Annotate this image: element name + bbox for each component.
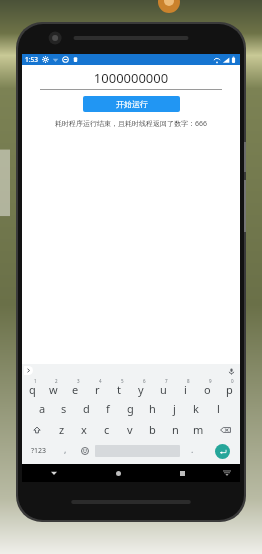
button[interactable]: Backspace <box>210 419 240 440</box>
staticText: 1:53 <box>25 55 38 64</box>
staticText: t <box>117 382 121 397</box>
button[interactable]: c <box>95 419 118 440</box>
staticText: . <box>191 443 194 455</box>
staticText: s <box>61 401 67 416</box>
button[interactable]: Shift <box>22 419 51 440</box>
staticText: r <box>95 382 100 397</box>
staticText: 0 <box>231 378 234 384</box>
button[interactable]: 9 <box>196 377 218 398</box>
button[interactable]: 8 <box>174 377 196 398</box>
button[interactable]: a <box>32 398 53 419</box>
button[interactable]: Hide keyboard <box>22 464 86 482</box>
staticText: 9 <box>209 378 212 384</box>
button[interactable]: v <box>118 419 141 440</box>
staticText: n <box>172 422 179 437</box>
staticText: w <box>49 382 58 397</box>
button[interactable]: f <box>97 398 119 419</box>
button[interactable]: 1 <box>22 377 43 398</box>
staticText: 1 <box>34 378 37 384</box>
staticText: a <box>39 401 46 416</box>
button[interactable]: Emoji <box>75 440 95 462</box>
button[interactable]: ?123 <box>22 440 55 462</box>
button[interactable]: 2 <box>43 377 64 398</box>
button[interactable]: Switch keyboard <box>214 464 240 482</box>
staticText: ?123 <box>31 446 47 456</box>
staticText: b <box>149 422 156 437</box>
staticText: i <box>184 382 187 397</box>
button[interactable]: 1000000000 <box>40 69 222 90</box>
button[interactable]: h <box>141 398 163 419</box>
button[interactable]: . <box>180 440 204 462</box>
staticText: 开始运行 <box>116 99 148 109</box>
staticText: m <box>193 422 204 437</box>
button[interactable]: Expand suggestions <box>24 366 33 375</box>
staticText: e <box>72 382 79 397</box>
button[interactable]: m <box>187 419 210 440</box>
staticText: , <box>64 443 67 455</box>
staticText: z <box>59 422 65 437</box>
button[interactable]: 3 <box>64 377 86 398</box>
staticText: q <box>29 382 36 397</box>
button[interactable]: z <box>51 419 73 440</box>
button[interactable]: l <box>207 398 229 419</box>
staticText: j <box>173 401 176 416</box>
staticText: 7 <box>165 378 168 384</box>
staticText: 耗时程序运行结束，且耗时线程返回了数字：666 <box>28 119 234 129</box>
staticText: g <box>127 401 134 416</box>
button[interactable]: b <box>141 419 164 440</box>
staticText: 3 <box>77 378 80 384</box>
staticText: x <box>81 422 87 437</box>
staticText: 1000000000 <box>40 69 222 87</box>
staticText: o <box>204 382 211 397</box>
staticText: 6 <box>143 378 146 384</box>
staticText: k <box>193 401 199 416</box>
staticText: u <box>160 382 167 397</box>
staticText: 2 <box>55 378 58 384</box>
staticText: 8 <box>187 378 190 384</box>
staticText: d <box>83 401 90 416</box>
button[interactable]: d <box>75 398 97 419</box>
staticText: f <box>106 401 110 416</box>
button[interactable]: j <box>163 398 185 419</box>
button[interactable]: Enter <box>215 444 230 459</box>
button[interactable]: 6 <box>130 377 152 398</box>
staticText: l <box>217 401 220 416</box>
button[interactable]: g <box>119 398 141 419</box>
button[interactable]: Recents <box>150 464 214 482</box>
staticText: h <box>149 401 156 416</box>
button[interactable]: x <box>73 419 95 440</box>
button[interactable]: Home <box>86 464 150 482</box>
button[interactable]: s <box>53 398 75 419</box>
button[interactable]: 0 <box>218 377 240 398</box>
button[interactable]: 5 <box>108 377 130 398</box>
staticText: 4 <box>99 378 102 384</box>
staticText: p <box>226 382 233 397</box>
staticText: c <box>104 422 110 437</box>
button[interactable]: , <box>55 440 75 462</box>
button[interactable]: 7 <box>152 377 174 398</box>
staticText: v <box>127 422 133 437</box>
staticText: y <box>138 382 144 397</box>
button[interactable]: Voice input <box>226 366 236 376</box>
button[interactable]: k <box>185 398 207 419</box>
button[interactable]: n <box>164 419 187 440</box>
button[interactable]: 4 <box>86 377 108 398</box>
button[interactable]: 开始运行 <box>83 96 180 112</box>
staticText: 5 <box>121 378 124 384</box>
